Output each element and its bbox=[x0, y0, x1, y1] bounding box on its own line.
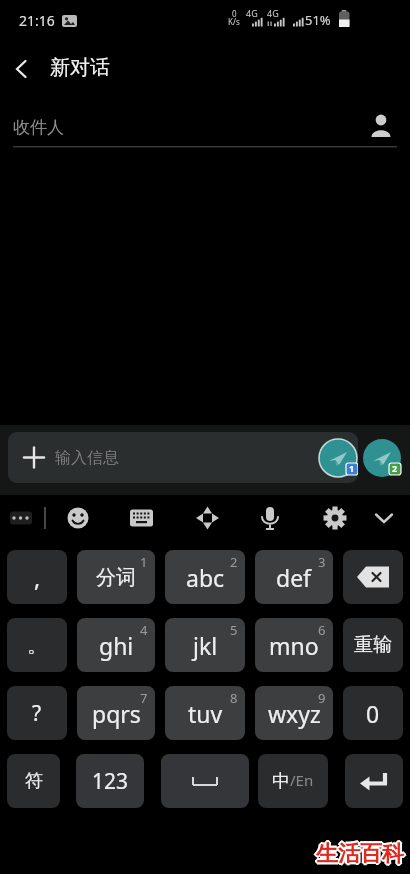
button[interactable]: wxyz bbox=[255, 686, 333, 740]
staticText: 6 bbox=[318, 621, 326, 639]
button[interactable]: 123 bbox=[76, 754, 144, 808]
staticText: tuv bbox=[188, 698, 223, 729]
button[interactable]: pqrs bbox=[77, 686, 155, 740]
staticText: 123 bbox=[92, 767, 129, 796]
staticText: K/s bbox=[228, 16, 240, 27]
staticText: 0 bbox=[366, 698, 380, 729]
staticText: 新对话 bbox=[50, 55, 110, 80]
button[interactable]: 1 bbox=[319, 439, 357, 477]
staticText: 4 bbox=[140, 621, 148, 639]
button[interactable] bbox=[4, 54, 40, 90]
button[interactable] bbox=[188, 497, 226, 541]
staticText: 生活百科 bbox=[315, 841, 403, 869]
button[interactable]: def bbox=[255, 550, 333, 604]
staticText: 2 bbox=[230, 553, 238, 571]
staticText: 2 bbox=[392, 462, 398, 474]
button[interactable] bbox=[122, 497, 160, 541]
staticText: ghi bbox=[99, 630, 134, 661]
staticText: 1 bbox=[140, 553, 148, 571]
button[interactable]: jkl bbox=[165, 618, 245, 672]
button[interactable]: 分词 bbox=[77, 550, 155, 604]
staticText: 生活百科 bbox=[315, 839, 403, 867]
staticText: 21:16 bbox=[19, 11, 55, 30]
staticText: 7 bbox=[140, 689, 148, 707]
button[interactable]: ghi bbox=[77, 618, 155, 672]
staticText: 1 bbox=[349, 462, 355, 474]
staticText: 输入信息 bbox=[55, 448, 119, 468]
staticText: jkl bbox=[193, 630, 218, 661]
staticText: 分词 bbox=[96, 565, 136, 590]
button[interactable]: abc bbox=[165, 550, 245, 604]
button[interactable] bbox=[343, 550, 403, 604]
staticText: 生活百科 bbox=[318, 840, 406, 868]
button[interactable]: ? bbox=[7, 686, 67, 740]
staticText: 生活百科 bbox=[314, 840, 402, 868]
staticText: def bbox=[276, 562, 312, 593]
staticText: 3 bbox=[318, 553, 326, 571]
staticText: 生活百科 bbox=[317, 839, 405, 867]
button[interactable]: mno bbox=[255, 618, 333, 672]
staticText: 收件人 bbox=[13, 117, 64, 138]
staticText: 。 bbox=[27, 633, 47, 658]
button[interactable]: 。 bbox=[7, 618, 67, 672]
button[interactable]: 0 bbox=[343, 686, 403, 740]
button[interactable]: , bbox=[7, 550, 67, 604]
button[interactable]: 重输 bbox=[343, 618, 403, 672]
button[interactable]: 2 bbox=[363, 439, 401, 477]
button[interactable] bbox=[59, 497, 97, 541]
staticText: 符 bbox=[25, 770, 43, 793]
button[interactable]: 符 bbox=[7, 754, 60, 808]
button[interactable]: tuv bbox=[165, 686, 245, 740]
button[interactable] bbox=[345, 754, 403, 808]
staticText: mno bbox=[269, 630, 319, 661]
button[interactable] bbox=[2, 497, 40, 541]
staticText: 生活百科 bbox=[316, 838, 404, 866]
button[interactable]: 输入信息 bbox=[8, 432, 358, 483]
staticText: 0 bbox=[232, 8, 237, 19]
staticText: 生活百科 bbox=[317, 841, 405, 869]
staticText: 生活百科 bbox=[316, 840, 404, 868]
staticText: 51% bbox=[305, 11, 331, 29]
button[interactable] bbox=[251, 497, 289, 541]
staticText: 9 bbox=[318, 689, 326, 707]
button[interactable]: 收件人 bbox=[0, 105, 410, 155]
button[interactable] bbox=[365, 497, 403, 541]
staticText: wxyz bbox=[268, 698, 321, 729]
button[interactable]: 中 bbox=[258, 754, 328, 808]
staticText: 中 bbox=[272, 770, 290, 793]
staticText: 4G bbox=[246, 7, 258, 19]
staticText: abc bbox=[186, 562, 225, 593]
staticText: 5 bbox=[230, 621, 238, 639]
staticText: ? bbox=[32, 699, 42, 728]
staticText: 重输 bbox=[354, 633, 392, 657]
staticText: pqrs bbox=[92, 698, 141, 729]
button[interactable] bbox=[161, 754, 249, 808]
staticText: 生活百科 bbox=[316, 842, 404, 870]
staticText: 4G bbox=[267, 7, 279, 19]
staticText: 8 bbox=[230, 689, 238, 707]
staticText: , bbox=[34, 562, 41, 593]
staticText: /En bbox=[290, 770, 314, 790]
button[interactable] bbox=[316, 497, 354, 541]
